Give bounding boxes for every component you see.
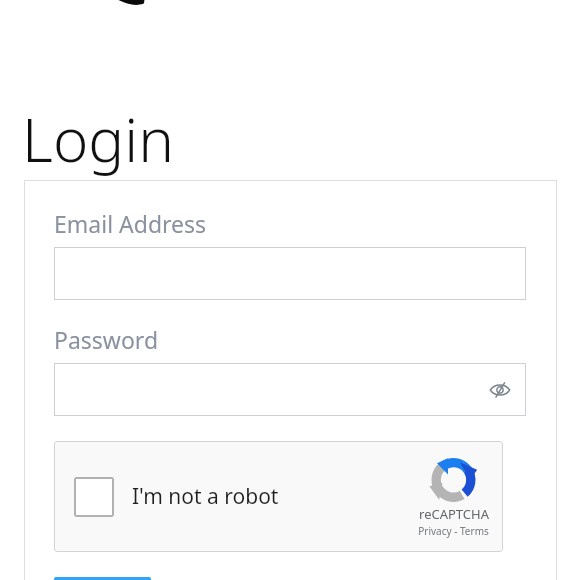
staticText: I'm not a robot <box>132 482 279 511</box>
staticText: reCAPTCHA <box>419 505 489 523</box>
staticText: Email Address <box>54 208 207 239</box>
button[interactable] <box>54 577 151 580</box>
button[interactable]: I'm not a robot checkbox <box>54 441 503 552</box>
staticText: Password <box>54 324 159 355</box>
button[interactable]: Show password <box>54 363 526 416</box>
button[interactable]: Show password <box>486 376 514 404</box>
button[interactable]: I'm not a robot checkbox <box>74 477 114 517</box>
staticText: Login <box>22 98 174 180</box>
staticText: Privacy - Terms <box>418 524 489 538</box>
button[interactable] <box>54 247 526 300</box>
